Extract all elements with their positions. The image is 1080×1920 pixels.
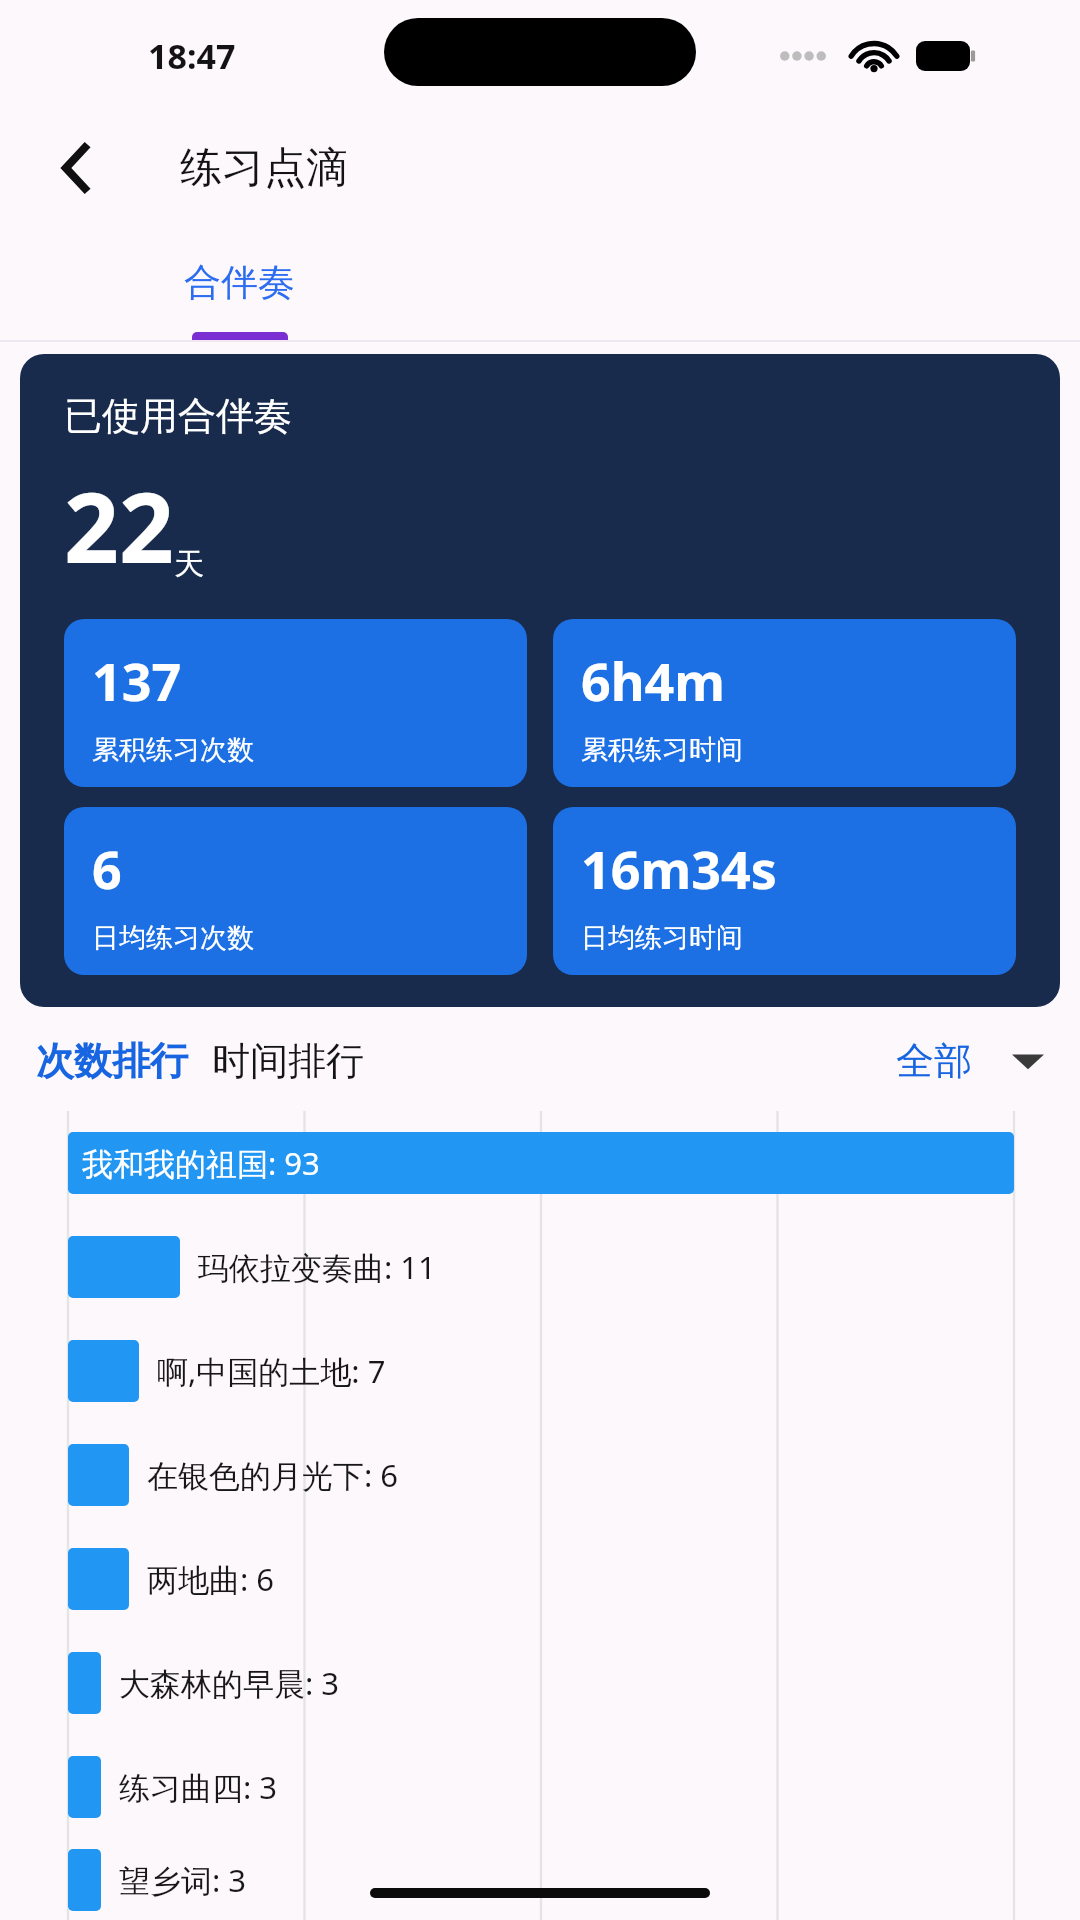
button[interactable]: Back: [36, 126, 120, 210]
button[interactable]: 在银色的月光下: 6: [0, 1423, 1080, 1527]
button[interactable]: 合伴奏: [178, 259, 301, 342]
button[interactable]: 我和我的祖国: 93: [0, 1111, 1080, 1215]
staticText: 天: [174, 545, 204, 583]
staticText: 练习点滴: [180, 142, 348, 195]
button[interactable]: 大森林的早晨: 3: [0, 1631, 1080, 1735]
staticText: 次数排行: [36, 1037, 188, 1085]
staticText: 18:47: [148, 33, 236, 79]
staticText: 16m34s: [581, 833, 777, 904]
button[interactable]: 137: [64, 619, 527, 787]
staticText: 两地曲: 6: [147, 1558, 275, 1600]
staticText: 啊,中国的土地: 7: [157, 1350, 386, 1392]
button[interactable]: 6h4m: [553, 619, 1016, 787]
button[interactable]: 练习曲四: 3: [0, 1735, 1080, 1839]
staticText: 6h4m: [581, 645, 725, 716]
staticText: 日均练习次数: [92, 921, 254, 955]
staticText: 练习曲四: 3: [119, 1766, 278, 1808]
button[interactable]: 次数排行: [36, 1037, 188, 1085]
staticText: 玛依拉变奏曲: 11: [198, 1246, 436, 1288]
staticText: 累积练习次数: [92, 733, 254, 767]
staticText: 全部: [896, 1037, 972, 1085]
button[interactable]: 时间排行: [212, 1037, 364, 1085]
staticText: 在银色的月光下: 6: [147, 1454, 399, 1496]
staticText: 6: [92, 833, 122, 904]
button[interactable]: 玛依拉变奏曲: 11: [0, 1215, 1080, 1319]
button[interactable]: 16m34s: [553, 807, 1016, 975]
staticText: 望乡词: 3: [119, 1859, 247, 1901]
button[interactable]: 啊,中国的土地: 7: [0, 1319, 1080, 1423]
staticText: 时间排行: [212, 1037, 364, 1085]
button[interactable]: 6: [64, 807, 527, 975]
staticText: 日均练习时间: [581, 921, 743, 955]
staticText: 合伴奏: [184, 259, 295, 306]
staticText: 大森林的早晨: 3: [119, 1662, 340, 1704]
staticText: 累积练习时间: [581, 733, 743, 767]
staticText: 22: [64, 460, 174, 591]
staticText: 137: [92, 645, 182, 716]
button[interactable]: 两地曲: 6: [0, 1527, 1080, 1631]
staticText: 已使用合伴奏: [64, 392, 292, 440]
button[interactable]: 望乡词: 3: [0, 1839, 1080, 1920]
button[interactable]: 全部: [896, 1037, 1044, 1085]
staticText: 我和我的祖国: 93: [82, 1142, 320, 1184]
